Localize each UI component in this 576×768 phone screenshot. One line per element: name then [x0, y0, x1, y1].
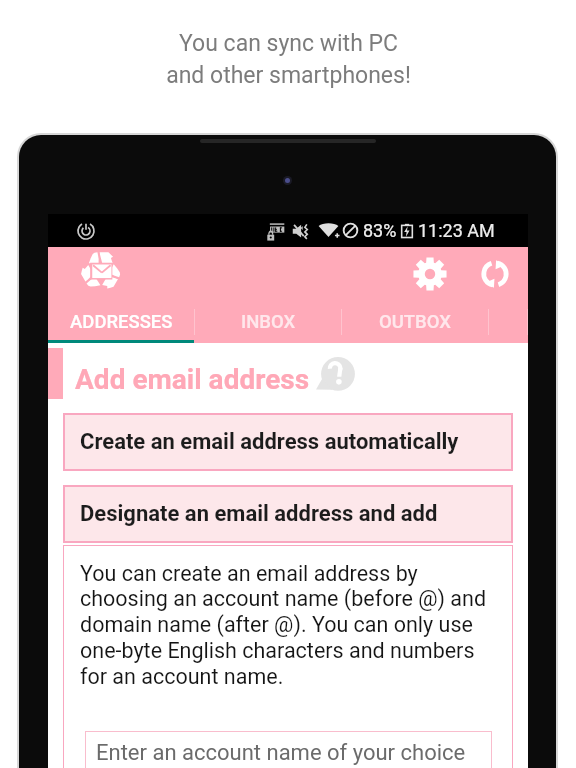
button[interactable]: OUTBOX	[342, 300, 489, 343]
staticText: Enter an account name of your choice	[96, 740, 466, 766]
button[interactable]: Sync	[478, 257, 512, 291]
button[interactable]	[489, 300, 528, 343]
button[interactable]: Settings	[412, 256, 448, 292]
staticText: Create an email address automatically	[80, 429, 459, 455]
button[interactable]: Enter an account name of your choice	[85, 731, 492, 768]
staticText: and other smartphones!	[166, 62, 411, 89]
button[interactable]: Help	[320, 357, 356, 393]
staticText: INBOX	[241, 311, 296, 333]
button[interactable]: Create an email address automatically	[63, 413, 513, 471]
staticText: OUTBOX	[379, 311, 452, 333]
staticText: ADDRESSES	[70, 311, 173, 333]
button[interactable]: App logo	[79, 249, 123, 293]
staticText: Add email address	[75, 363, 310, 396]
staticText: You can create an email address by choos…	[80, 561, 492, 689]
staticText: Designate an email address and add	[80, 501, 438, 527]
button[interactable]: INBOX	[195, 300, 342, 343]
staticText: You can sync with PC	[179, 30, 398, 57]
button[interactable]: ADDRESSES	[48, 300, 195, 343]
staticText: 11:23 AM	[418, 220, 495, 241]
staticText: 83%	[363, 220, 397, 241]
button[interactable]: Designate an email address and add	[63, 485, 513, 543]
